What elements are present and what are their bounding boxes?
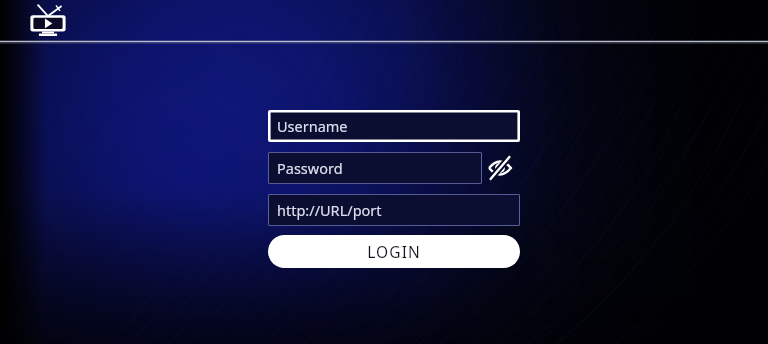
button[interactable]: Password <box>268 152 482 184</box>
button[interactable]: App logo <box>28 4 68 38</box>
button[interactable]: Username <box>268 110 520 142</box>
staticText: http://URL/port <box>277 200 382 220</box>
staticText: LOGIN <box>367 241 421 262</box>
button[interactable]: LOGIN <box>268 235 520 268</box>
button[interactable]: http://URL/port <box>268 194 520 226</box>
button[interactable]: Show password <box>486 154 514 182</box>
staticText: Password <box>277 158 343 178</box>
staticText: Username <box>277 116 348 136</box>
